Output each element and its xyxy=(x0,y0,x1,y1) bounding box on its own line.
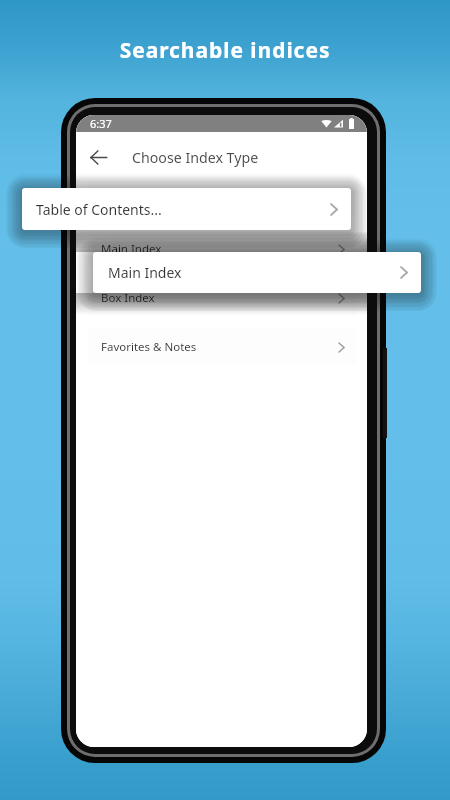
staticText: Main Index xyxy=(101,241,162,257)
staticText: Favorites & Notes xyxy=(101,339,197,355)
staticText: 6:37 xyxy=(90,116,112,131)
staticText: Main Index xyxy=(108,263,182,282)
staticText: Box Index xyxy=(101,290,155,306)
button[interactable]: Favorites & Notes xyxy=(88,329,356,365)
button[interactable]: Back xyxy=(76,132,121,182)
button[interactable]: Table of Contents xyxy=(88,182,356,218)
button[interactable]: Box Index xyxy=(88,280,356,316)
staticText: Table of Contents... xyxy=(36,200,162,219)
staticText: Table of Contents xyxy=(101,192,196,208)
button[interactable]: Main Index xyxy=(93,252,421,293)
staticText: Choose Index Type xyxy=(132,148,259,167)
staticText: Searchable indices xyxy=(0,36,450,65)
button[interactable]: Table of Contents... xyxy=(22,188,351,230)
button[interactable]: Main Index xyxy=(88,231,356,267)
